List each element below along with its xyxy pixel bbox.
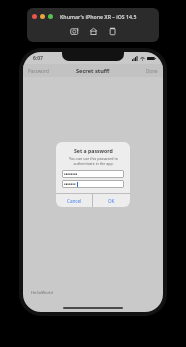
- staticText: authenticate in the app.: [73, 161, 114, 166]
- button[interactable]: Zoom: [48, 14, 53, 19]
- button[interactable]: Minimize: [40, 14, 45, 19]
- button[interactable]: Close: [32, 14, 37, 19]
- staticText: ••••••••: [64, 171, 78, 177]
- staticText: Done: [146, 68, 158, 74]
- staticText: •••••••: [64, 181, 76, 187]
- button[interactable]: Rotate: [107, 26, 118, 37]
- staticText: OK: [108, 198, 115, 204]
- staticText: Password: [28, 68, 49, 74]
- button[interactable]: •••••••: [62, 180, 124, 188]
- button[interactable]: OK: [93, 194, 130, 207]
- staticText: Cancel: [67, 198, 82, 204]
- staticText: 6:07: [33, 55, 43, 62]
- staticText: Set a password: [74, 147, 113, 154]
- button[interactable]: Password: [23, 66, 54, 76]
- staticText: HelloWorld: [31, 290, 53, 296]
- staticText: Secret stuff!: [76, 67, 110, 75]
- staticText: Khumar's iPhone XR – iOS 14.5: [60, 13, 137, 20]
- button[interactable]: Done: [141, 66, 163, 76]
- button[interactable]: Home: [88, 26, 99, 37]
- button[interactable]: Cancel: [56, 194, 92, 207]
- button[interactable]: ••••••••: [62, 170, 124, 178]
- button[interactable]: Screenshot: [69, 26, 80, 37]
- staticText: You can use this password to: [69, 156, 118, 161]
